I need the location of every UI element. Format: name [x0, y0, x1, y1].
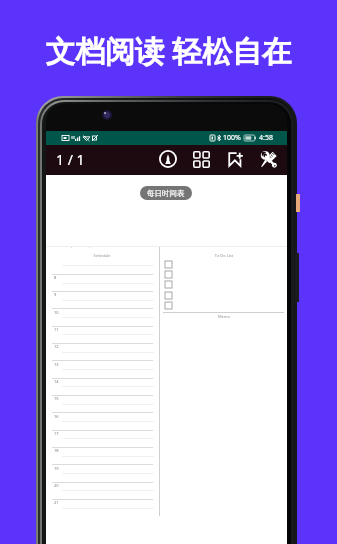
staticText: 15 [54, 396, 59, 401]
staticText: 17 [54, 431, 59, 436]
staticText: ᴴᴰ [71, 136, 75, 141]
button[interactable]: Page grid [189, 147, 213, 171]
staticText: 8 [54, 275, 57, 280]
staticText: To Do List [205, 253, 243, 258]
staticText: 21 [54, 500, 59, 505]
button[interactable]: Tools [257, 147, 281, 171]
staticText: 20 [54, 483, 59, 488]
staticText: 19 [54, 466, 59, 471]
staticText: 13 [54, 362, 59, 367]
staticText: 9 [54, 292, 57, 297]
staticText: Schedule [84, 253, 120, 258]
staticText: 18 [54, 448, 59, 453]
button[interactable]: Add bookmark [223, 147, 247, 171]
button[interactable]: Annotate [156, 147, 180, 171]
staticText: 16 [54, 414, 59, 419]
staticText: 100% [223, 133, 241, 143]
staticText: 14 [54, 379, 59, 384]
staticText: 4:58 [259, 133, 273, 143]
staticText: 12 [54, 344, 59, 349]
staticText: 1 / 1 [56, 150, 85, 169]
staticText: Memo [205, 314, 243, 319]
staticText: 11 [54, 327, 59, 332]
button[interactable]: 每日时间表 [140, 186, 192, 200]
staticText: 每日时间表 [147, 189, 185, 198]
staticText: 10 [54, 310, 59, 315]
staticText: 文档阅读 轻松自在 [45, 30, 292, 71]
